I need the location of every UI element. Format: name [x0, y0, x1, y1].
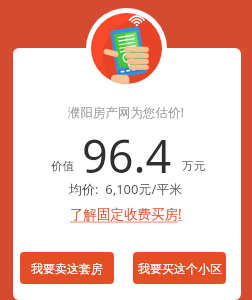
staticText: 了解固定收费买房! [70, 205, 182, 223]
button[interactable]: 了解固定收费买房! [66, 203, 186, 225]
staticText: 我要买这个小区 [138, 261, 222, 276]
staticText: 均价: 6,100元/平米 [69, 180, 183, 198]
staticText: 万元 [182, 159, 205, 173]
staticText: 濮阳房产网为您估价! [68, 104, 184, 121]
staticText: 96.4 [82, 125, 172, 173]
button[interactable]: 我要买这个小区 [133, 252, 226, 284]
staticText: 我要卖这套房 [31, 261, 103, 276]
button[interactable]: 我要卖这套房 [20, 252, 114, 284]
staticText: 价值 [51, 159, 74, 173]
